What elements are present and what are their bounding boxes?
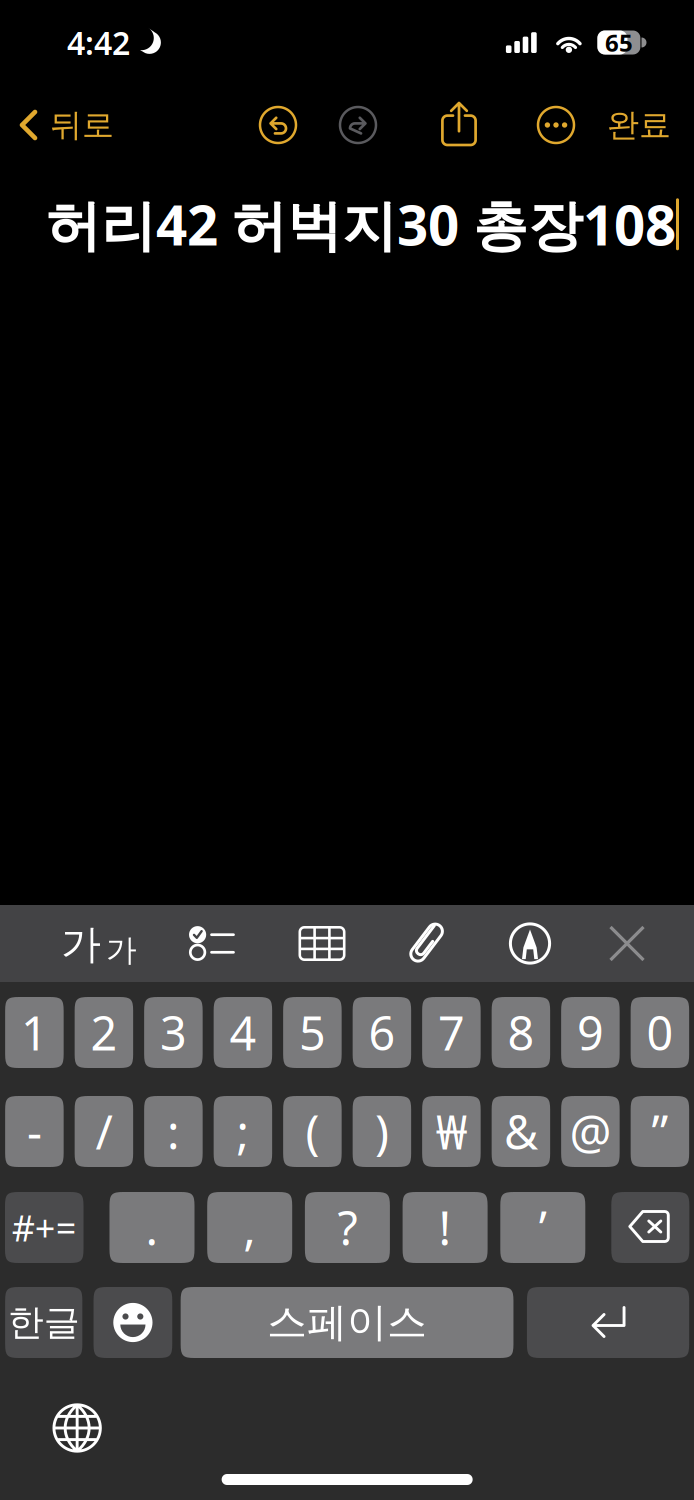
button[interactable]: . — [109, 1192, 194, 1263]
staticText: ? — [337, 1196, 357, 1258]
button[interactable]: 2 — [75, 997, 133, 1068]
button[interactable]: 뒤로 — [18, 93, 150, 157]
staticText: 2 — [90, 1001, 117, 1063]
button[interactable]: ? — [305, 1192, 390, 1263]
staticText: 9 — [577, 1001, 604, 1063]
staticText: #+= — [12, 1204, 77, 1251]
staticText: 4 — [229, 1001, 256, 1063]
button[interactable]: , — [207, 1192, 292, 1263]
staticText: 3 — [160, 1001, 187, 1063]
button[interactable]: : — [144, 1096, 203, 1167]
button[interactable]: Return — [527, 1287, 689, 1358]
staticText: 뒤로 — [50, 105, 114, 145]
staticText: 가 — [61, 920, 101, 969]
button[interactable]: Undo — [247, 93, 309, 157]
button[interactable]: ) — [353, 1096, 411, 1167]
button[interactable]: ! — [403, 1192, 488, 1263]
staticText: 완료 — [607, 105, 671, 145]
staticText: 가 — [106, 931, 137, 969]
button[interactable]: Table — [279, 905, 365, 982]
button[interactable]: Markup — [487, 905, 573, 982]
button[interactable]: 스페이스 — [181, 1287, 513, 1358]
staticText: ₩ — [436, 1100, 467, 1162]
button[interactable]: 3 — [144, 997, 203, 1068]
button[interactable]: @ — [561, 1096, 620, 1167]
staticText: ! — [439, 1196, 452, 1258]
staticText: / — [95, 1100, 112, 1162]
button[interactable]: ( — [283, 1096, 342, 1167]
button[interactable]: Next keyboard — [42, 1398, 112, 1458]
staticText: ( — [305, 1100, 319, 1162]
button[interactable]: ₩ — [422, 1096, 481, 1167]
button[interactable]: Emoji — [93, 1287, 172, 1358]
staticText: 한글 — [8, 1300, 80, 1345]
staticText: - — [27, 1100, 42, 1162]
button[interactable]: 0 — [631, 997, 689, 1068]
button[interactable]: / — [75, 1096, 133, 1167]
button[interactable]: Share — [428, 92, 490, 156]
button[interactable]: 5 — [283, 997, 342, 1068]
staticText: : — [167, 1100, 180, 1162]
staticText: 0 — [646, 1001, 673, 1063]
button[interactable]: #+= — [5, 1192, 83, 1263]
staticText: ) — [375, 1100, 389, 1162]
button[interactable]: Hide keyboard — [584, 905, 670, 982]
staticText: ’ — [539, 1196, 547, 1258]
staticText: 1 — [21, 1001, 48, 1063]
button[interactable]: ’ — [500, 1192, 585, 1263]
button[interactable]: 완료 — [591, 93, 687, 157]
staticText: 4:42 — [67, 21, 130, 64]
button[interactable]: ” — [631, 1096, 689, 1167]
button[interactable]: ; — [214, 1096, 272, 1167]
staticText: 5 — [299, 1001, 326, 1063]
staticText: ; — [236, 1100, 249, 1162]
staticText: 8 — [507, 1001, 534, 1063]
staticText: & — [504, 1100, 538, 1162]
button[interactable]: & — [492, 1096, 550, 1167]
button[interactable]: 가 — [51, 906, 147, 983]
staticText: 스페이스 — [267, 1298, 427, 1347]
button[interactable]: 1 — [5, 997, 64, 1068]
button[interactable]: 8 — [492, 997, 550, 1068]
button[interactable]: Redo — [327, 93, 389, 157]
button[interactable]: More — [525, 93, 587, 157]
staticText: . — [145, 1196, 158, 1258]
button[interactable]: 4 — [214, 997, 272, 1068]
staticText: 6 — [368, 1001, 395, 1063]
button[interactable]: Checklist — [169, 905, 255, 982]
staticText: 65 — [605, 27, 633, 58]
button[interactable]: - — [5, 1096, 64, 1167]
staticText: ” — [651, 1100, 668, 1162]
button[interactable]: 9 — [561, 997, 620, 1068]
staticText: @ — [569, 1100, 611, 1162]
button[interactable]: 7 — [422, 997, 481, 1068]
button[interactable]: 6 — [353, 997, 411, 1068]
staticText: 7 — [438, 1001, 465, 1063]
button[interactable]: 한글 — [5, 1287, 82, 1358]
staticText: 허리42 허벅지30 총장108 — [46, 188, 676, 261]
button[interactable]: Attach — [384, 905, 470, 982]
staticText: , — [243, 1196, 256, 1258]
button[interactable]: Delete — [611, 1192, 689, 1263]
